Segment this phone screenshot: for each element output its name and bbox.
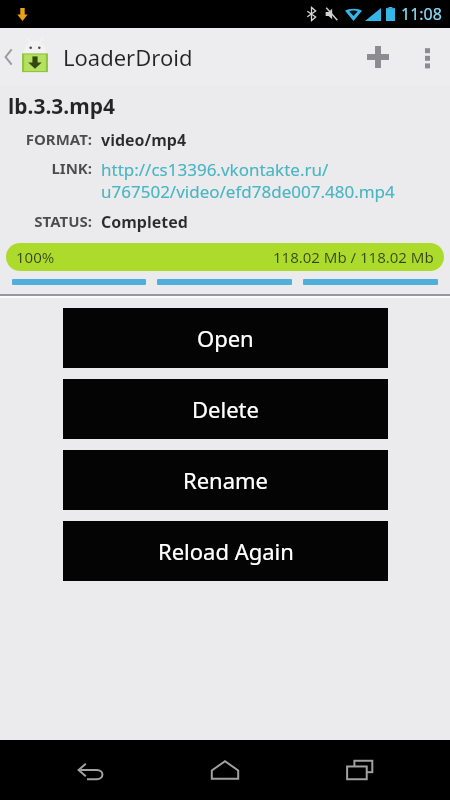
button[interactable]: Back [0, 33, 201, 81]
staticText: lb.3.3.mp4 [8, 92, 116, 121]
staticText: 118.02 Mb / 118.02 Mb [273, 247, 434, 267]
other: Back [4, 48, 13, 66]
button[interactable]: More options [404, 28, 450, 85]
staticText: Open [197, 323, 254, 353]
staticText: Reload Again [158, 536, 294, 566]
staticText: Delete [192, 394, 259, 424]
staticText: Rename [183, 465, 269, 495]
staticText: LoaderDroid [63, 42, 193, 72]
button[interactable]: Delete [63, 379, 388, 439]
button[interactable]: Home [180, 740, 270, 800]
button[interactable]: Reload Again [63, 521, 388, 581]
staticText: Completed [101, 211, 188, 233]
button[interactable]: Recent apps [315, 740, 405, 800]
staticText: video/mp4 [101, 129, 187, 151]
button[interactable]: Add download [352, 28, 404, 85]
staticText: FORMAT: [25, 129, 92, 149]
staticText: LINK: [51, 158, 92, 178]
button[interactable]: Open [63, 308, 388, 368]
staticText: http://cs13396.vkontakte.ru/ u767502/vid… [101, 158, 395, 203]
button[interactable]: Rename [63, 450, 388, 510]
button[interactable]: Back [45, 740, 135, 800]
staticText: STATUS: [34, 211, 92, 231]
staticText: 100% [16, 247, 55, 267]
staticText: 11:08 [401, 3, 442, 25]
